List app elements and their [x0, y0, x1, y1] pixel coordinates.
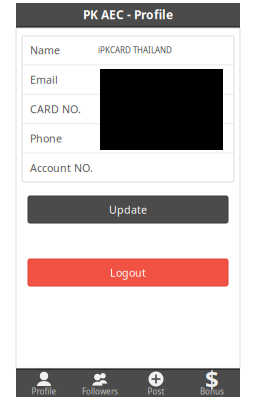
staticText: Post [147, 386, 164, 397]
button[interactable]: Post [128, 369, 184, 397]
button[interactable]: Logout [28, 259, 228, 286]
staticText: Bonus [200, 386, 224, 397]
staticText: Update [109, 202, 147, 217]
staticText: PK AEC - Profile [83, 6, 173, 22]
button[interactable]: Update [28, 196, 228, 223]
staticText: Name [30, 43, 60, 57]
button[interactable]: Followers [72, 369, 128, 397]
staticText: Phone [30, 131, 62, 145]
staticText: Logout [110, 265, 146, 280]
button[interactable]: Bonus [184, 369, 240, 397]
staticText: iPKCARD THAILAND [98, 45, 172, 55]
staticText: Followers [82, 386, 118, 397]
staticText: Profile [31, 386, 56, 397]
button[interactable]: Profile [16, 369, 72, 397]
staticText: Email [30, 72, 58, 87]
staticText: CARD NO. [30, 102, 81, 116]
staticText: Account NO. [30, 161, 93, 175]
staticText: $ [205, 363, 219, 395]
